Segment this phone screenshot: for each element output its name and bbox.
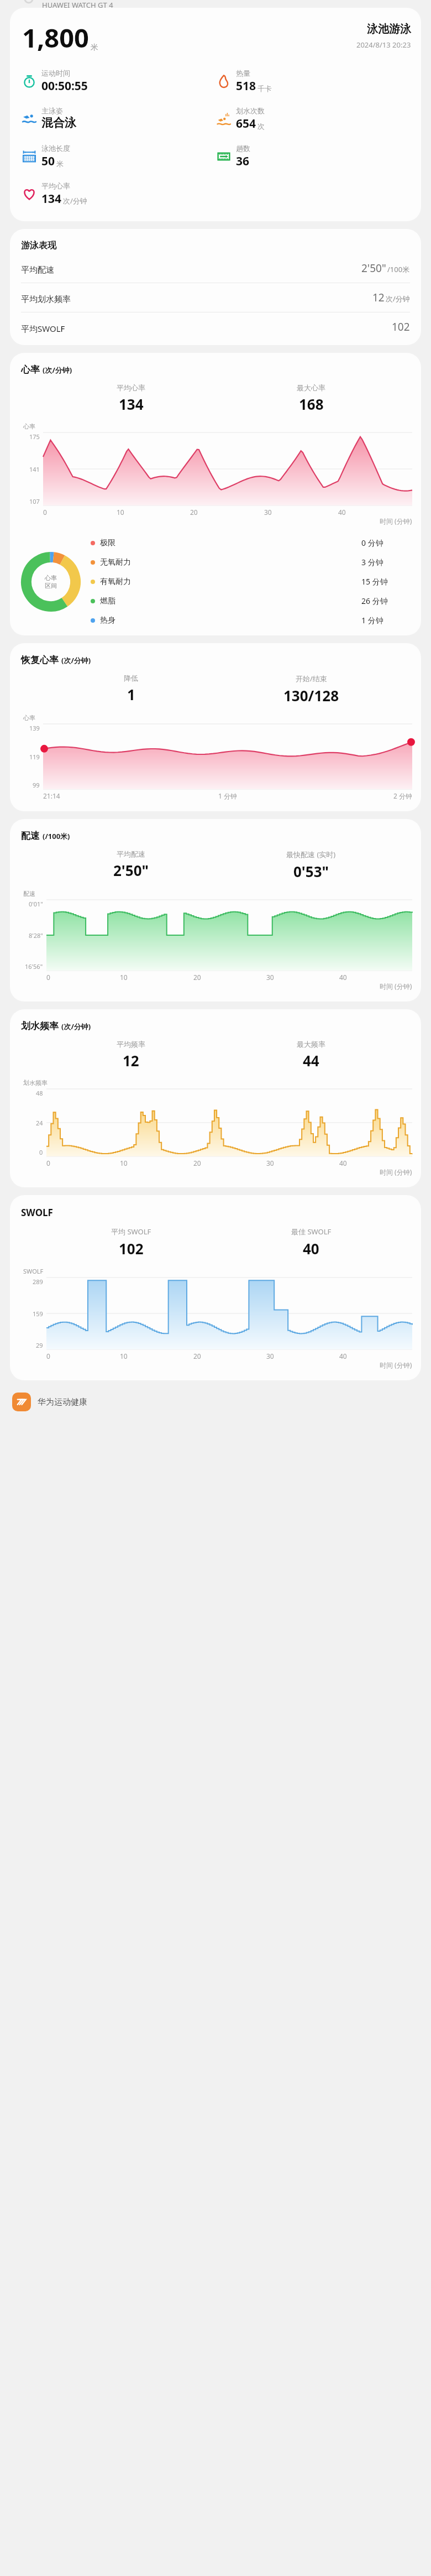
staticText: 134 — [119, 394, 144, 414]
staticText: 168 — [299, 394, 324, 414]
staticText: 游泳表现 — [21, 240, 56, 251]
staticText: 最佳 SWOLF — [291, 1227, 332, 1237]
button[interactable]: 游泳表现 — [10, 229, 421, 345]
staticText: 30 — [266, 973, 274, 982]
staticText: 10 — [117, 508, 124, 517]
staticText: 20 — [193, 1352, 201, 1360]
button[interactable]: 恢复心率 — [10, 643, 421, 811]
staticText: 划水频率 — [21, 1020, 59, 1032]
staticText: 恢复心率 — [21, 654, 59, 666]
button[interactable]: 平均配速 — [21, 261, 410, 275]
staticText: 燃脂 — [100, 596, 115, 606]
button[interactable]: 心率 — [10, 353, 421, 635]
staticText: 3 分钟 — [361, 557, 383, 567]
staticText: 26 分钟 — [361, 596, 388, 606]
staticText: 2024/8/13 20:23 — [356, 40, 411, 50]
staticText: 划水频率 — [23, 1079, 48, 1087]
staticText: 配速 — [21, 830, 40, 842]
staticText: 无氧耐力 — [100, 557, 131, 567]
staticText: 华为运动健康 — [38, 1397, 87, 1407]
button[interactable]: 平均划水频率 — [21, 290, 410, 305]
staticText: 00:50:55 — [41, 78, 88, 94]
staticText: 21:14 — [43, 791, 60, 800]
staticText: 0 — [39, 1148, 43, 1156]
staticText: 107 — [29, 497, 40, 505]
staticText: 平均划水频率 — [21, 294, 71, 305]
staticText: 0 — [46, 1352, 50, 1360]
staticText: 289 — [33, 1277, 43, 1286]
staticText: 配速 — [23, 890, 35, 898]
button[interactable]: 热身 — [91, 615, 412, 625]
staticText: 2 分钟 — [393, 791, 412, 800]
button[interactable]: 泳池长度 — [22, 144, 217, 169]
button[interactable]: 热量 — [217, 69, 411, 94]
staticText: 175 — [29, 432, 40, 441]
button[interactable]: 1,800 — [10, 8, 421, 221]
staticText: 最快配速 (实时) — [286, 849, 336, 859]
staticText: 10 — [120, 973, 128, 982]
staticText: 20 — [193, 973, 201, 982]
button[interactable]: 配速 — [10, 819, 421, 1002]
button[interactable]: 划水频率 — [10, 1009, 421, 1187]
button[interactable]: 无氧耐力 — [91, 557, 412, 567]
staticText: 开始/结束 — [296, 674, 327, 684]
staticText: 8'28" — [29, 931, 43, 940]
staticText: 30 — [264, 508, 272, 517]
staticText: 平均心率 — [41, 181, 70, 190]
button[interactable]: 燃脂 — [91, 596, 412, 606]
staticText: 平均配速 — [117, 849, 145, 858]
staticText: 时间 (分钟) — [380, 1360, 412, 1369]
staticText: /100米 — [387, 264, 410, 274]
staticText: SWOLF — [23, 1267, 44, 1275]
button[interactable]: 有氧耐力 — [91, 576, 412, 587]
staticText: 0'01" — [29, 900, 43, 908]
staticText: HUAWEI WATCH GT 4 — [42, 0, 113, 8]
staticText: 主泳姿 — [41, 106, 63, 115]
staticText: 时间 (分钟) — [380, 517, 412, 525]
staticText: 134 — [41, 191, 62, 207]
staticText: (次/分钟) — [43, 365, 72, 375]
button[interactable]: 平均SWOLF — [21, 320, 410, 334]
staticText: 热身 — [100, 616, 115, 625]
staticText: 次 — [257, 122, 265, 131]
staticText: 40 — [339, 973, 347, 982]
staticText: 10 — [120, 1352, 128, 1360]
staticText: 心率 — [23, 423, 35, 430]
button[interactable]: 极限 — [91, 538, 412, 548]
staticText: 划水次数 — [236, 106, 265, 115]
staticText: 30 — [266, 1352, 274, 1360]
button[interactable]: 趟数 — [217, 144, 411, 169]
staticText: 米 — [91, 43, 98, 53]
button[interactable]: 运动时间 — [22, 69, 217, 94]
staticText: 泳池长度 — [41, 144, 70, 153]
staticText: 千卡 — [257, 84, 272, 93]
staticText: 1,800 — [22, 20, 89, 55]
staticText: 130/128 — [283, 686, 339, 705]
button[interactable]: 主泳姿 — [22, 106, 217, 130]
staticText: (次/分钟) — [61, 1021, 91, 1031]
staticText: (/100米) — [43, 831, 70, 841]
staticText: 降低 — [124, 674, 138, 682]
staticText: SWOLF — [21, 1206, 53, 1219]
staticText: 44 — [303, 1051, 319, 1070]
staticText: 102 — [392, 320, 410, 334]
staticText: 102 — [119, 1239, 144, 1258]
button[interactable]: 平均心率 — [22, 181, 217, 207]
staticText: 159 — [33, 1310, 43, 1318]
staticText: 0 — [43, 508, 47, 517]
staticText: 30 — [266, 1159, 274, 1167]
staticText: 40 — [303, 1239, 319, 1258]
button[interactable]: SWOLF — [10, 1195, 421, 1380]
staticText: 1 分钟 — [361, 615, 383, 625]
staticText: 趟数 — [236, 144, 250, 153]
staticText: 0 — [46, 973, 50, 982]
staticText: 12 — [123, 1051, 139, 1070]
staticText: (次/分钟) — [61, 655, 91, 665]
other: 华为运动健康 — [12, 1393, 31, 1411]
staticText: 平均 SWOLF — [111, 1227, 151, 1237]
staticText: 次/分钟 — [63, 196, 87, 206]
button[interactable]: 划水次数 — [217, 106, 411, 132]
staticText: 16'56" — [25, 962, 43, 971]
staticText: 混合泳 — [41, 116, 76, 130]
button[interactable]: 华为运动健康 — [12, 1393, 431, 1411]
